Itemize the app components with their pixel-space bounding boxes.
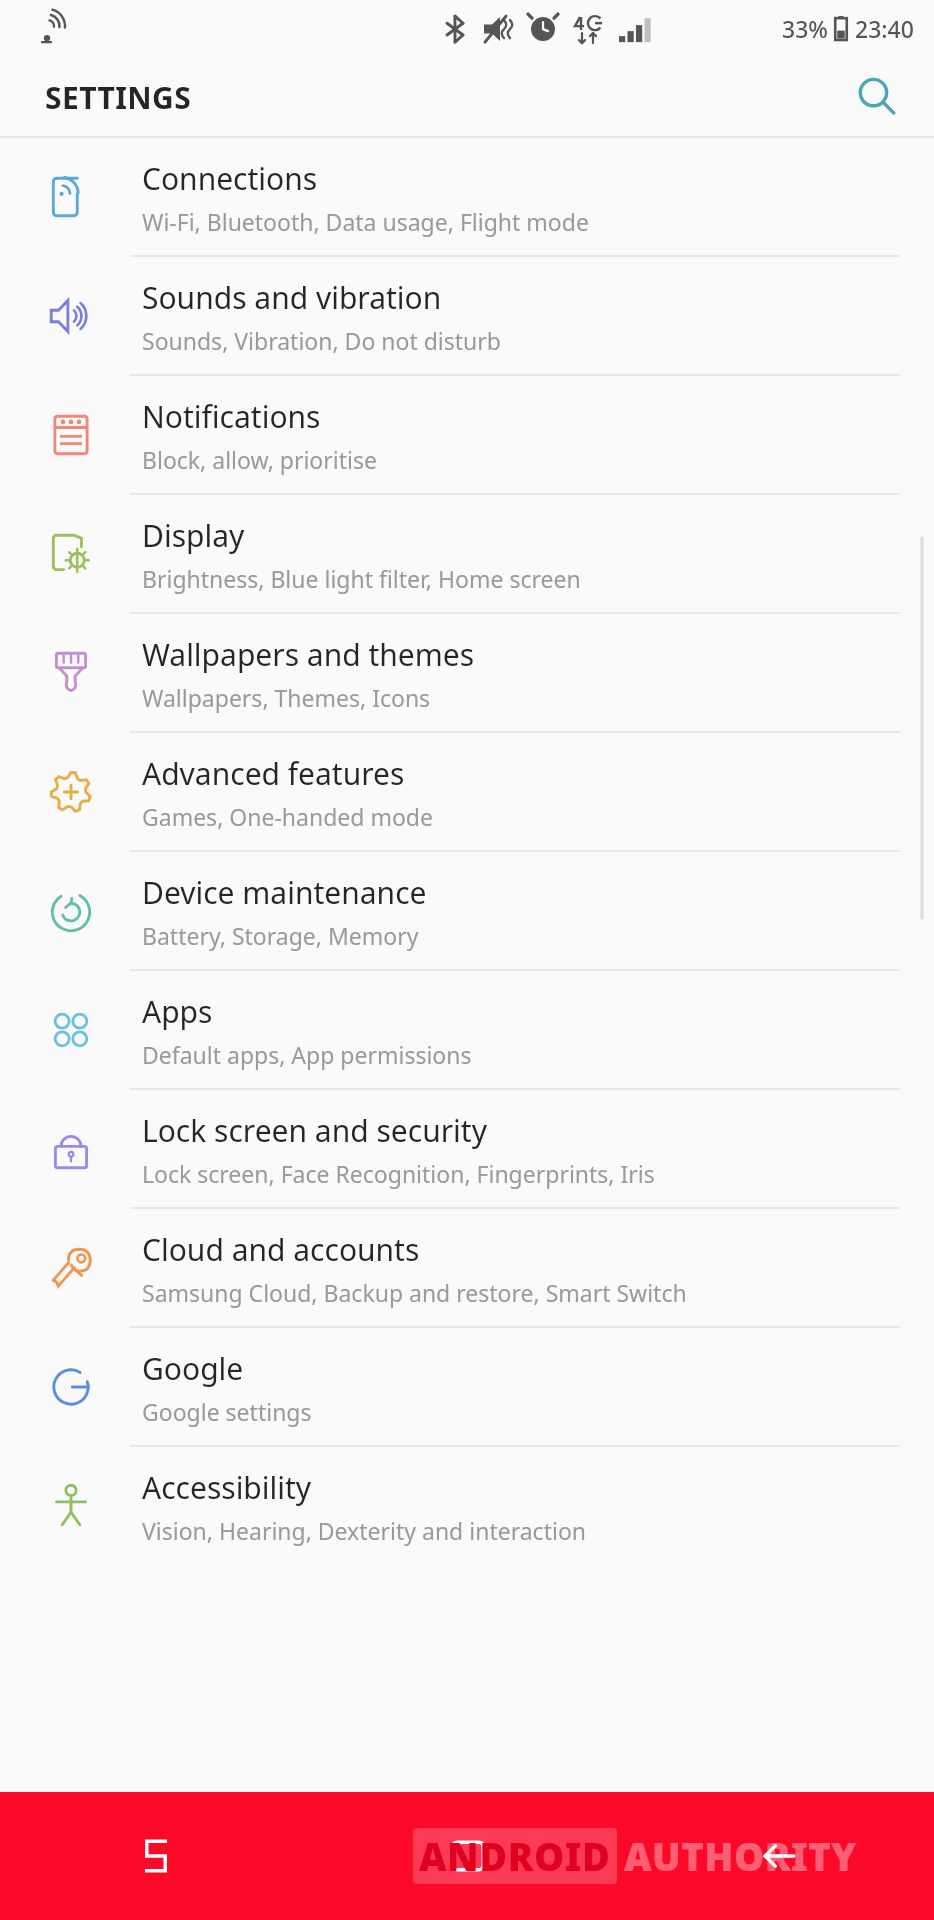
staticText: Apps <box>142 991 213 1032</box>
staticText: Wi-Fi, Bluetooth, Data usage, Flight mod… <box>142 206 589 237</box>
button[interactable]: Cloud and accounts <box>0 1209 934 1327</box>
staticText: 33% <box>782 13 828 44</box>
staticText: AUTHORITY <box>624 1830 857 1882</box>
staticText: 23:40 <box>855 13 914 44</box>
button[interactable]: Wallpapers and themes <box>0 614 934 732</box>
staticText: Games, One-handed mode <box>142 801 433 832</box>
button[interactable]: Device maintenance <box>0 852 934 970</box>
staticText: Brightness, Blue light filter, Home scre… <box>142 563 581 594</box>
button[interactable]: Search <box>844 64 910 130</box>
button[interactable]: Connections <box>0 138 934 256</box>
staticText: Cloud and accounts <box>142 1229 420 1270</box>
staticText: Block, allow, prioritise <box>142 444 377 475</box>
button[interactable]: Sounds and vibration <box>0 257 934 375</box>
staticText: Connections <box>142 158 318 199</box>
button[interactable]: Display <box>0 495 934 613</box>
button[interactable]: Apps <box>0 971 934 1089</box>
button[interactable]: Lock screen and security <box>0 1090 934 1208</box>
button[interactable]: Google <box>0 1328 934 1446</box>
staticText: Notifications <box>142 396 321 437</box>
button[interactable]: Recents <box>0 1792 312 1920</box>
staticText: Default apps, App permissions <box>142 1039 472 1070</box>
staticText: Display <box>142 515 245 556</box>
button[interactable]: Advanced features <box>0 733 934 851</box>
button[interactable]: Notifications <box>0 376 934 494</box>
staticText: Lock screen, Face Recognition, Fingerpri… <box>142 1158 655 1189</box>
button[interactable]: Accessibility <box>0 1447 934 1565</box>
staticText: ANDROID <box>419 1830 611 1882</box>
staticText: Vision, Hearing, Dexterity and interacti… <box>142 1515 587 1546</box>
staticText: Device maintenance <box>142 872 427 913</box>
staticText: Sounds and vibration <box>142 277 442 318</box>
staticText: Samsung Cloud, Backup and restore, Smart… <box>142 1277 687 1308</box>
staticText: Battery, Storage, Memory <box>142 920 419 951</box>
staticText: Lock screen and security <box>142 1110 487 1151</box>
staticText: Google <box>142 1348 244 1389</box>
staticText: Wallpapers, Themes, Icons <box>142 682 431 713</box>
staticText: Google settings <box>142 1396 312 1427</box>
staticText: Sounds, Vibration, Do not disturb <box>142 325 501 356</box>
staticText: Wallpapers and themes <box>142 634 475 675</box>
staticText: Advanced features <box>142 753 405 794</box>
button[interactable]: Back <box>623 1792 934 1920</box>
staticText: Accessibility <box>142 1467 312 1508</box>
button[interactable]: Home <box>312 1792 623 1920</box>
staticText: SETTINGS <box>45 77 192 118</box>
